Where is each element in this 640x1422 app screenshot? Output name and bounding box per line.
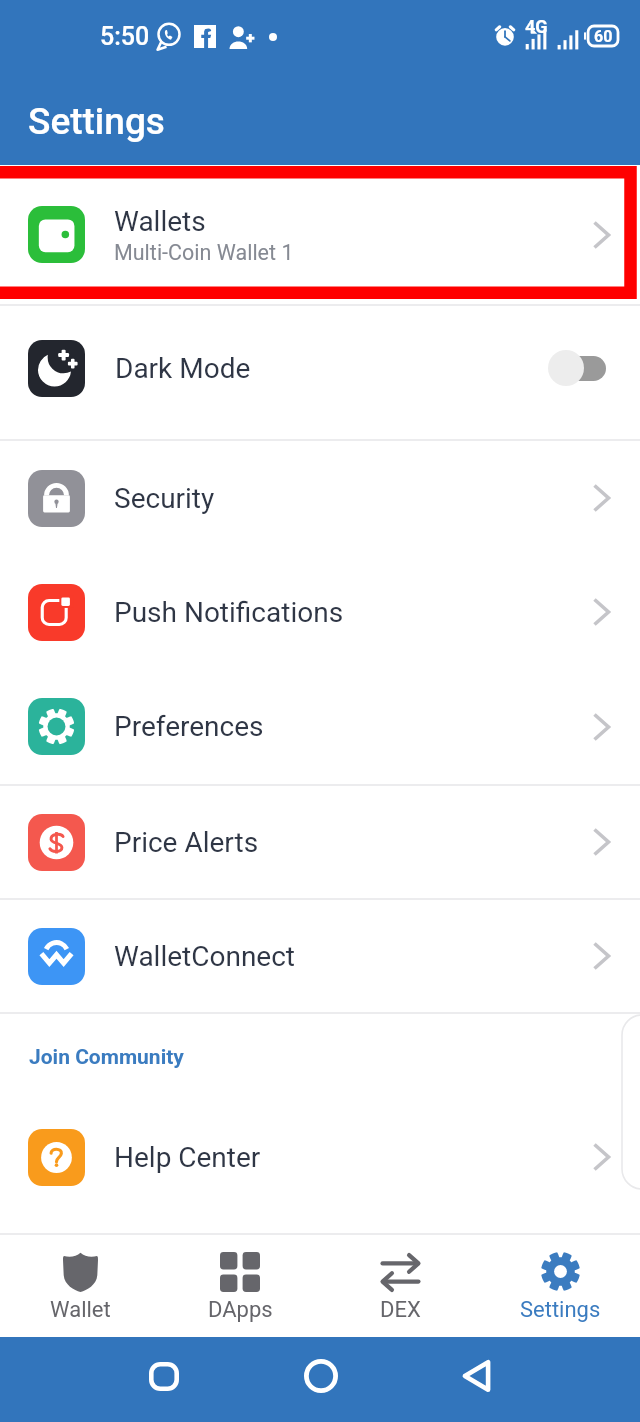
button[interactable]: Back xyxy=(462,1360,491,1392)
staticText: Settings xyxy=(28,100,165,143)
button[interactable]: Settings xyxy=(480,1235,640,1337)
staticText: 4G xyxy=(525,16,548,37)
button[interactable]: Push Notifications xyxy=(0,555,640,669)
staticText: Wallets xyxy=(114,205,206,238)
staticText: Security xyxy=(114,482,215,515)
button[interactable]: DEX xyxy=(320,1235,480,1337)
staticText: WalletConnect xyxy=(114,940,296,973)
staticText: Preferences xyxy=(114,710,264,743)
staticText: DApps xyxy=(208,1297,273,1323)
staticText: Join Community xyxy=(29,1045,184,1070)
staticText: Wallet xyxy=(50,1297,111,1323)
staticText: Help Center xyxy=(114,1141,261,1174)
button[interactable]: Price Alerts xyxy=(0,786,640,898)
button[interactable]: Wallets xyxy=(0,165,640,304)
staticText: Push Notifications xyxy=(114,596,344,629)
staticText: 5:50 xyxy=(100,22,150,51)
staticText: Multi-Coin Wallet 1 xyxy=(114,240,294,265)
button[interactable]: Home xyxy=(304,1359,338,1393)
button[interactable]: Wallet xyxy=(0,1235,160,1337)
staticText: Price Alerts xyxy=(114,826,259,859)
staticText: Settings xyxy=(520,1297,601,1323)
staticText: Dark Mode xyxy=(115,352,251,385)
staticText: 60 xyxy=(594,27,613,46)
button[interactable]: DApps xyxy=(160,1235,320,1337)
staticText: DEX xyxy=(380,1297,421,1323)
button[interactable]: Preferences xyxy=(0,669,640,784)
button[interactable]: Dark Mode xyxy=(0,306,640,439)
button[interactable]: Help Center xyxy=(0,1100,640,1214)
button[interactable]: WalletConnect xyxy=(0,900,640,1012)
button[interactable]: Security xyxy=(0,441,640,555)
button[interactable]: Recents xyxy=(149,1362,179,1391)
